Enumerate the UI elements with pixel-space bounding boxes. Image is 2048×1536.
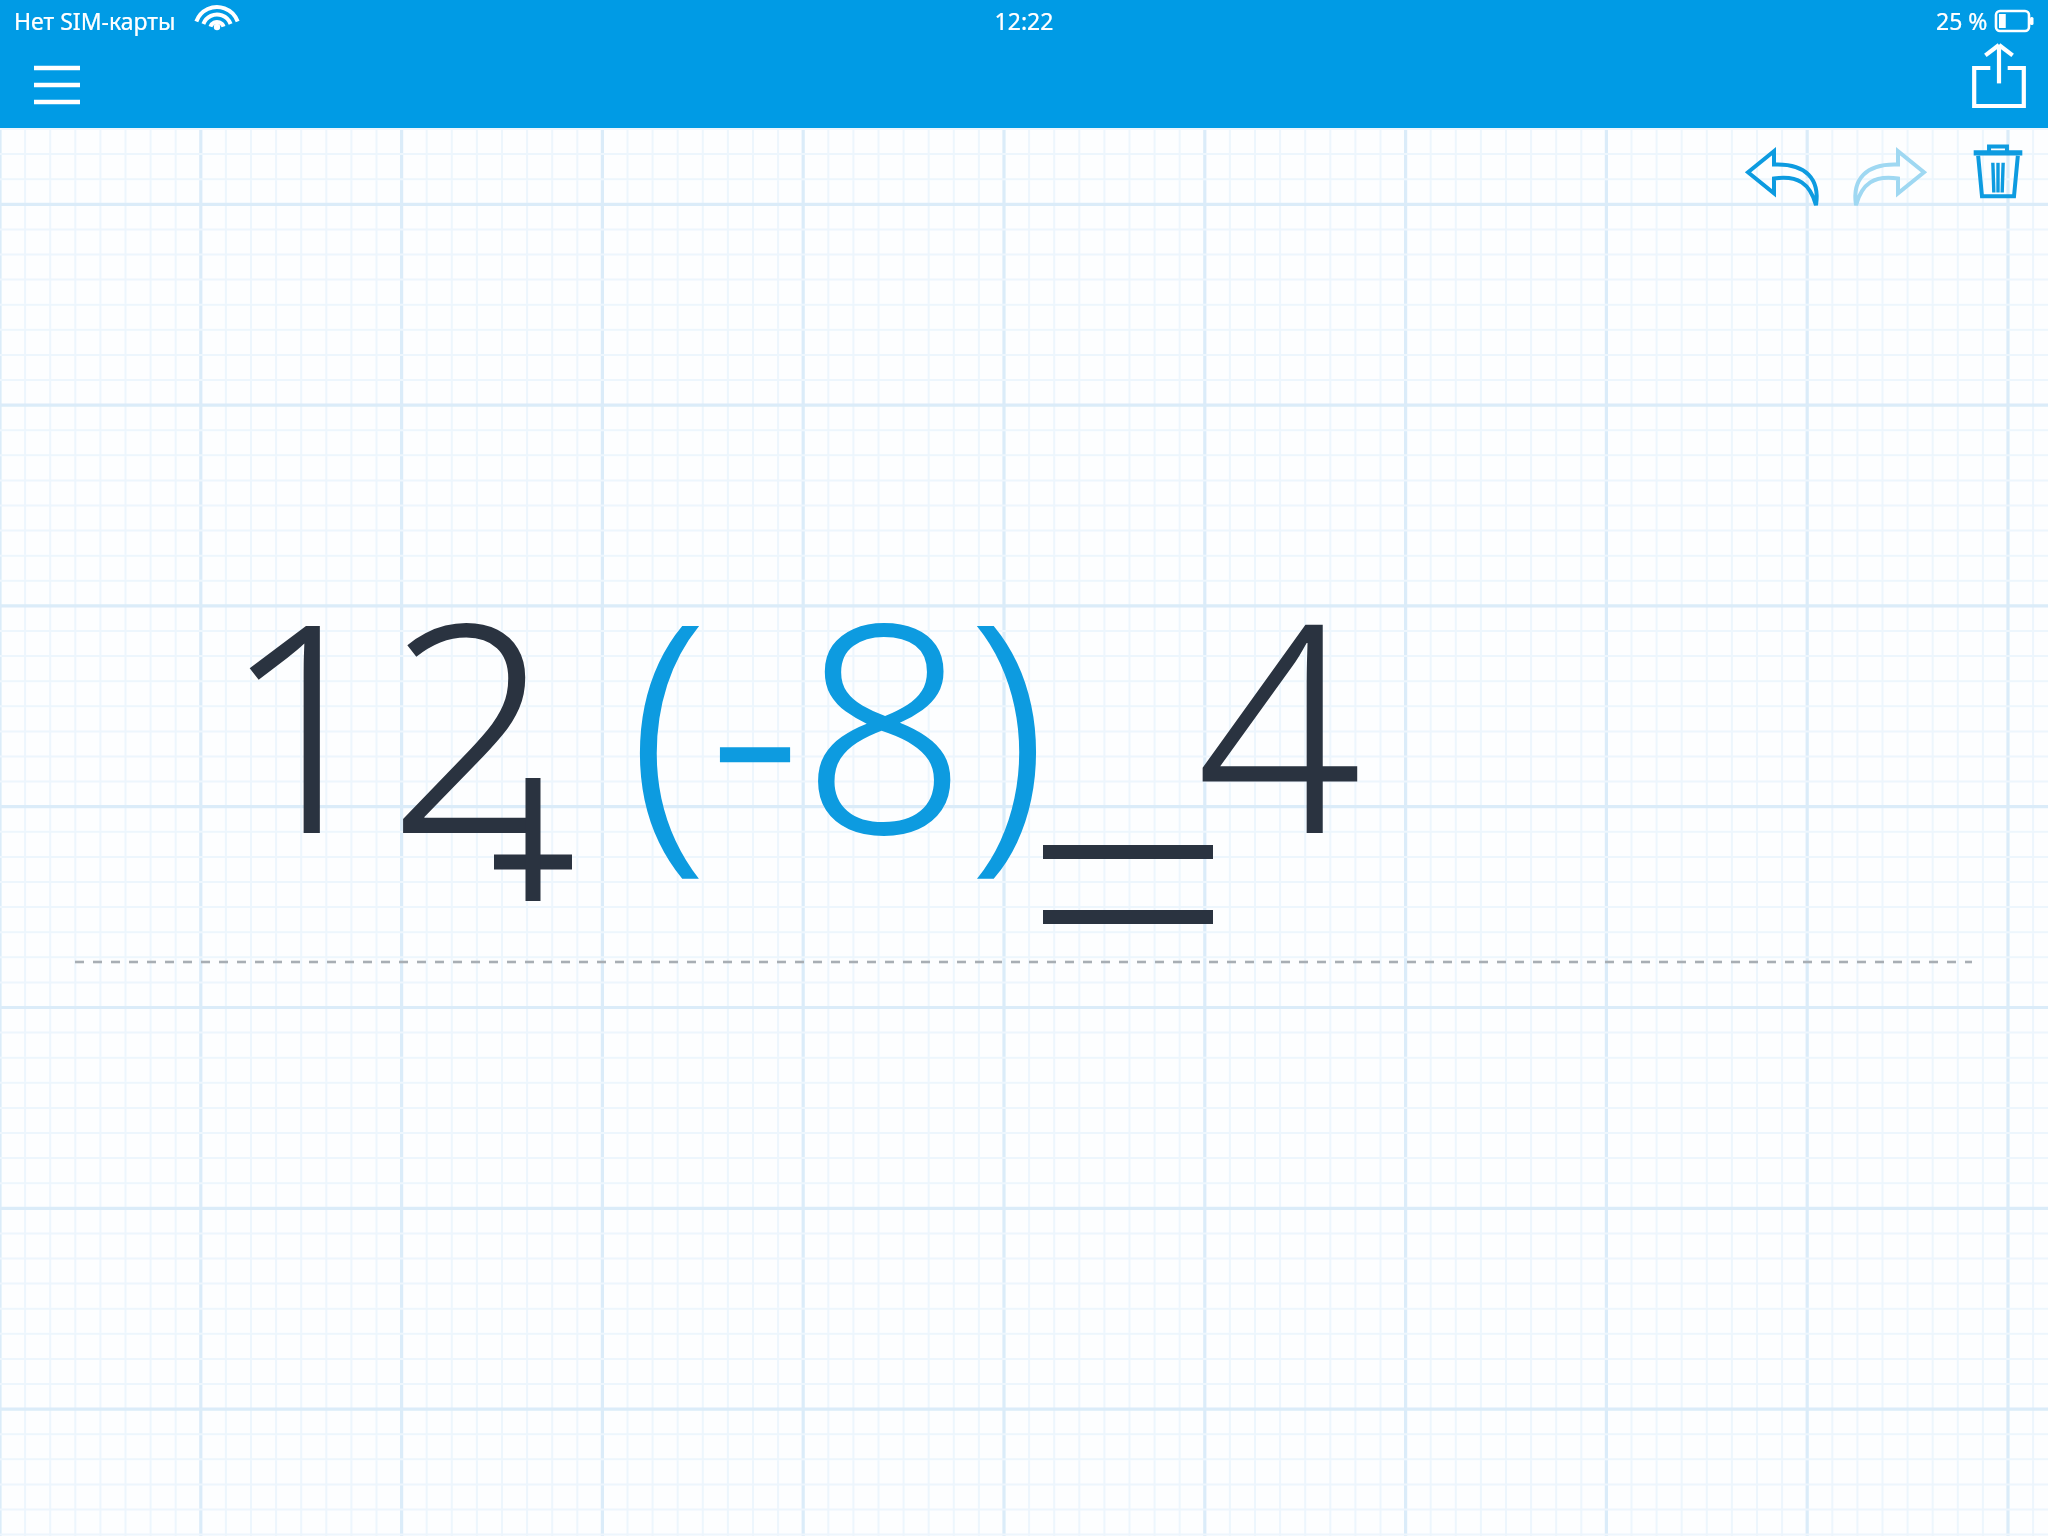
staticText: 12 <box>222 523 554 918</box>
button[interactable]: Delete <box>1966 140 2030 204</box>
staticText: 12:22 <box>0 5 2048 36</box>
staticText: 4 <box>1196 523 1362 918</box>
button[interactable]: Share <box>1968 40 2030 110</box>
button[interactable]: Redo <box>1852 140 1928 210</box>
staticText: (-8) <box>628 523 1048 918</box>
button[interactable]: Undo <box>1744 140 1820 210</box>
button[interactable]: Menu <box>20 54 80 106</box>
staticText: 25 % <box>1936 5 1988 36</box>
staticText: Нет SIM-карты <box>14 5 176 36</box>
